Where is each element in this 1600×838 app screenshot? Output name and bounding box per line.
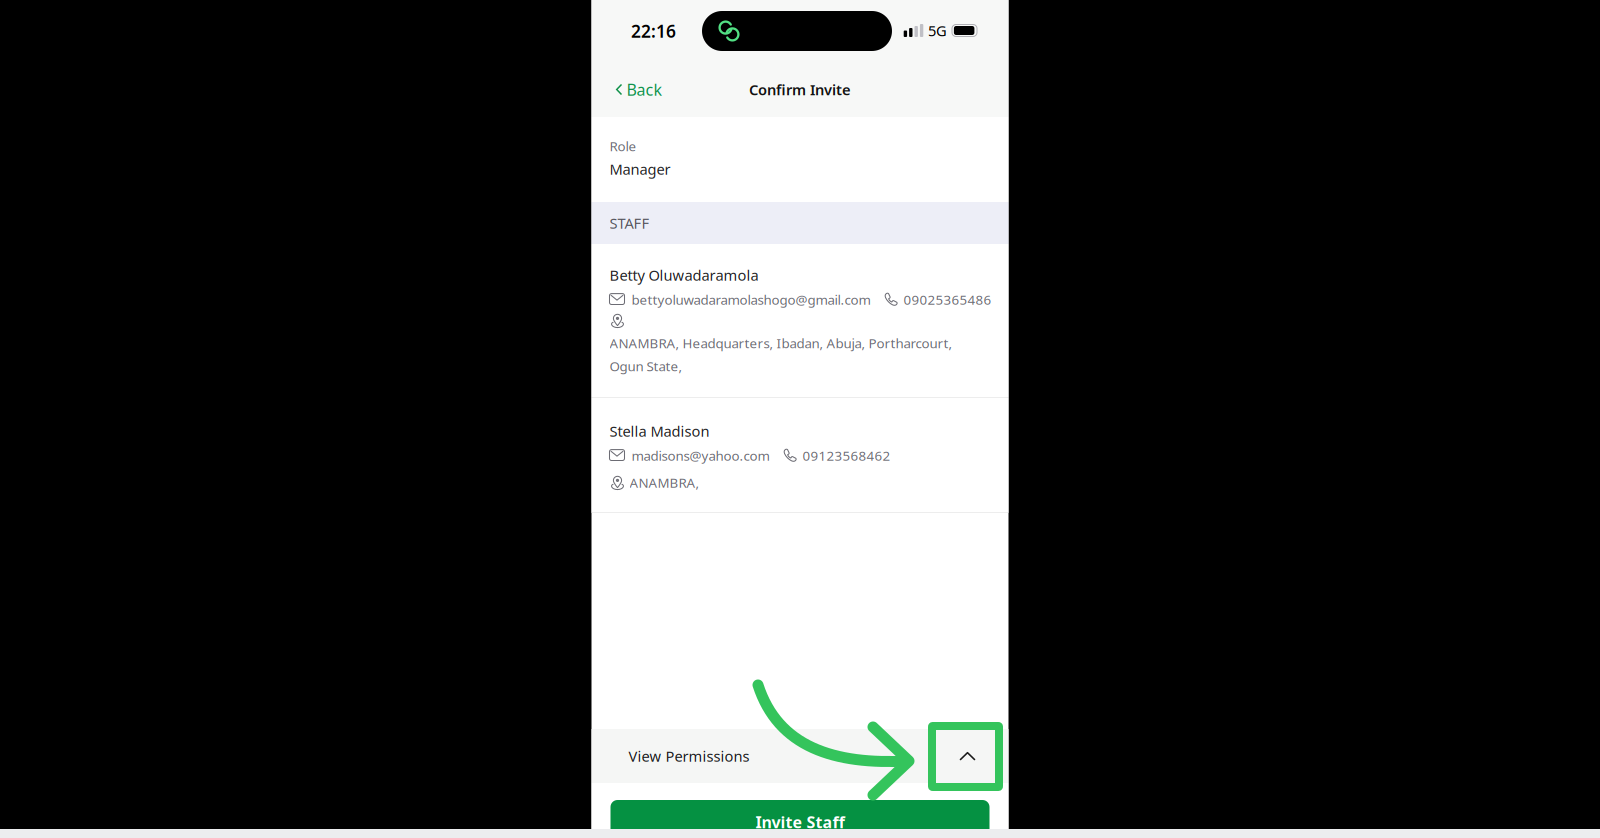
staticText: View Permissions (628, 746, 749, 766)
staticText: Confirm Invite (749, 80, 851, 99)
staticText: STAFF (609, 213, 649, 233)
button[interactable]: Invite Staff (610, 783, 989, 838)
staticText: 22:16 (631, 19, 676, 42)
staticText: ANAMBRA, Headquarters, Ibadan, Abuja, Po… (609, 334, 952, 352)
staticText: Stella Madison (609, 421, 709, 441)
button[interactable]: View Permissions (591, 729, 1008, 783)
staticText: Betty Oluwadaramola (609, 265, 758, 285)
staticText: 5G (928, 21, 947, 40)
staticText: Ogun State, (609, 357, 682, 375)
staticText: 09025365486 (903, 291, 991, 308)
staticText: Invite Staff (755, 811, 844, 833)
staticText: Role (609, 137, 636, 155)
button[interactable]: Back (612, 71, 665, 108)
staticText: madisons@yahoo.com (631, 447, 769, 464)
staticText: bettyoluwadaramolashogo@gmail.com (631, 291, 870, 308)
staticText: ANAMBRA, (629, 474, 699, 491)
staticText: 09123568462 (802, 447, 890, 464)
staticText: Back (626, 79, 662, 100)
staticText: Manager (609, 159, 670, 179)
